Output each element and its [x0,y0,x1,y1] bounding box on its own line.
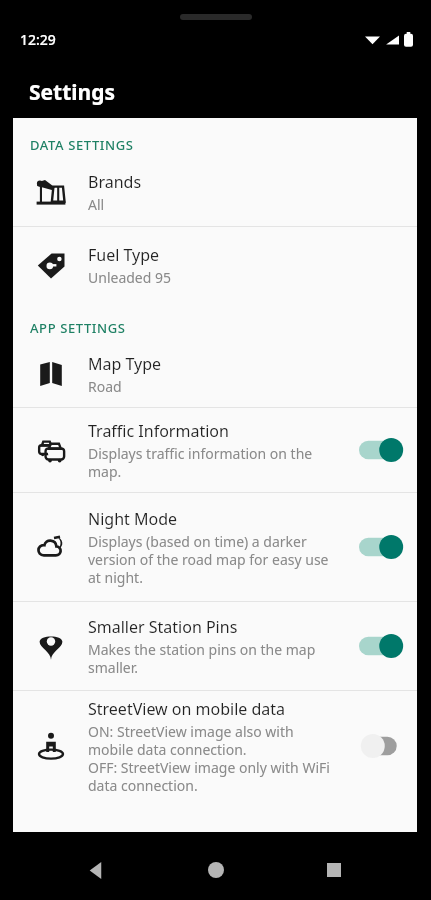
staticText: Traffic Information [88,420,229,442]
button[interactable]: Recent apps [312,848,356,892]
button[interactable]: Brands [13,158,417,226]
staticText: All [88,195,105,214]
button[interactable]: Night Mode [13,493,417,601]
staticText: Displays (based on time) a darker versio… [88,532,341,587]
button[interactable]: Traffic Information [13,408,417,492]
staticText: 12:29 [20,30,56,49]
button[interactable]: Toggle StreetView on mobile data [347,691,417,801]
button[interactable]: Map Type [13,341,417,407]
staticText: Smaller Station Pins [88,616,238,638]
staticText: Night Mode [88,508,178,530]
staticText: Map Type [88,353,162,375]
staticText: Settings [29,78,116,107]
button[interactable]: Fuel Type [13,227,417,303]
staticText: ON: StreetView image also with mobile da… [88,722,341,795]
button[interactable]: Toggle Smaller Station Pins [347,602,417,690]
staticText: Fuel Type [88,244,160,266]
button[interactable]: Toggle Traffic Information [347,408,417,492]
staticText: StreetView on mobile data [88,698,286,720]
button[interactable]: Home [194,848,238,892]
staticText: DATA SETTINGS [30,136,134,154]
staticText: APP SETTINGS [30,319,126,337]
staticText: Displays traffic information on the map. [88,444,341,481]
staticText: Road [88,377,122,396]
button[interactable]: Back [75,848,119,892]
button[interactable]: StreetView on mobile data [13,691,417,801]
staticText: Unleaded 95 [88,268,172,287]
staticText: Brands [88,171,142,193]
staticText: Makes the station pins on the map smalle… [88,640,341,677]
button[interactable]: Toggle Night Mode [347,493,417,601]
button[interactable]: Smaller Station Pins [13,602,417,690]
